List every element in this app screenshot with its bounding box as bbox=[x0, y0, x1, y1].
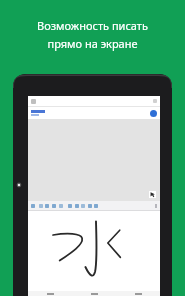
staticText: Возможность писать bbox=[37, 18, 148, 33]
button[interactable]: Tool 7 bbox=[75, 204, 79, 208]
button[interactable]: Tool 6 bbox=[68, 204, 72, 208]
button[interactable] bbox=[28, 211, 160, 291]
button[interactable]: Account bbox=[150, 110, 157, 117]
button[interactable]: Tool 5 bbox=[59, 204, 63, 208]
button[interactable]: Tool 9 bbox=[88, 204, 92, 208]
button[interactable]: Tool 8 bbox=[81, 204, 85, 208]
button[interactable]: Tool 2 bbox=[39, 204, 43, 208]
button[interactable]: Tool 3 bbox=[45, 204, 49, 208]
button[interactable]: Tool 10 bbox=[94, 204, 98, 208]
button[interactable]: Close bbox=[153, 99, 157, 103]
button[interactable] bbox=[31, 110, 150, 116]
button[interactable]: Tool 4 bbox=[52, 204, 56, 208]
button[interactable]: Tool 1 bbox=[31, 204, 35, 208]
staticText: прямо на экране bbox=[47, 36, 138, 51]
button[interactable]: Menu bbox=[31, 99, 36, 104]
